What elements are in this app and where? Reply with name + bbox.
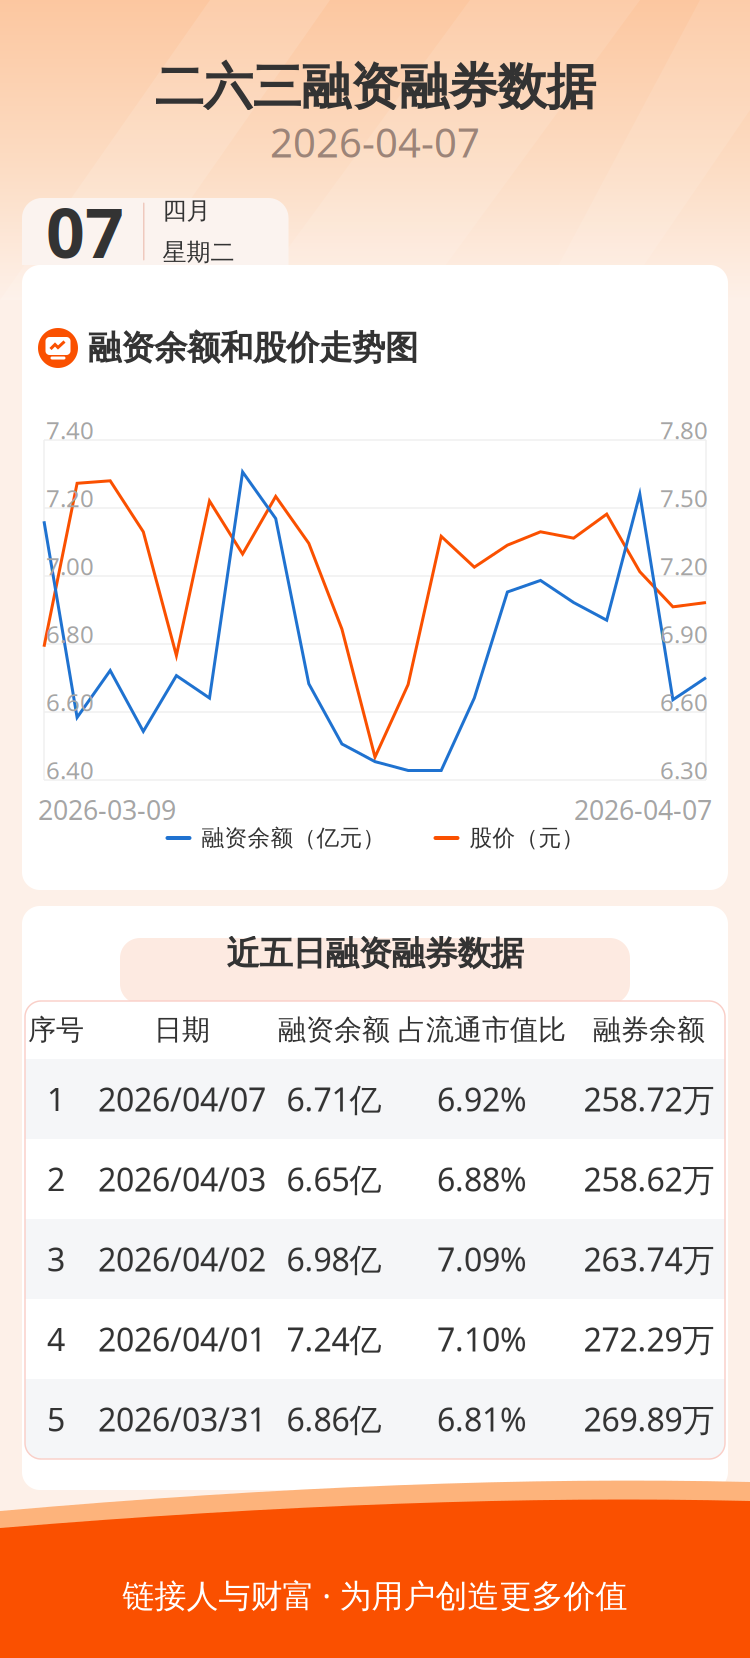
staticText: 占流通市值比 <box>398 1013 566 1047</box>
staticText: 4 <box>47 1318 65 1360</box>
staticText: 6.81% <box>437 1398 527 1440</box>
staticText: 股价（元） <box>469 824 584 852</box>
staticText: 7.24亿 <box>286 1318 381 1360</box>
staticText: 6.60 <box>660 686 708 718</box>
staticText: 融资余额 <box>278 1013 390 1047</box>
staticText: 2026/04/03 <box>98 1158 266 1200</box>
staticText: 2026-03-09 <box>38 792 176 827</box>
staticText: 星期二 <box>162 237 234 267</box>
staticText: 258.72万 <box>583 1078 714 1120</box>
staticText: 5 <box>47 1398 65 1440</box>
staticText: 263.74万 <box>583 1238 714 1280</box>
staticText: 6.30 <box>660 754 708 786</box>
staticText: 2026/04/07 <box>98 1078 266 1120</box>
staticText: 07 <box>46 186 124 277</box>
staticText: 6.60 <box>46 686 94 718</box>
staticText: 6.71亿 <box>286 1078 381 1120</box>
staticText: 7.09% <box>437 1238 527 1280</box>
staticText: 融资余额（亿元） <box>201 824 385 852</box>
staticText: 6.40 <box>46 754 94 786</box>
staticText: 7.10% <box>437 1318 527 1360</box>
staticText: 7.20 <box>46 482 94 514</box>
staticText: 6.88% <box>437 1158 527 1200</box>
staticText: 6.92% <box>437 1078 527 1120</box>
staticText: 7.00 <box>46 550 94 582</box>
staticText: 四月 <box>162 196 210 225</box>
staticText: 2026/04/02 <box>98 1238 266 1280</box>
staticText: 二六三融资融券数据 <box>154 57 595 117</box>
staticText: 链接人与财富 · 为用户创造更多价值 <box>122 1574 627 1616</box>
staticText: 融券余额 <box>593 1013 705 1047</box>
staticText: 6.90 <box>660 618 708 650</box>
staticText: 2026-04-07 <box>270 115 480 168</box>
staticText: 269.89万 <box>583 1398 714 1440</box>
staticText: 2026/03/31 <box>98 1398 266 1440</box>
staticText: 2 <box>47 1158 65 1200</box>
staticText: 258.62万 <box>583 1158 714 1200</box>
staticText: 7.80 <box>660 414 708 446</box>
staticText: 272.29万 <box>583 1318 714 1360</box>
staticText: 7.20 <box>660 550 708 582</box>
staticText: 6.98亿 <box>286 1238 381 1280</box>
staticText: 7.50 <box>660 482 708 514</box>
staticText: 6.80 <box>46 618 94 650</box>
staticText: 2026/04/01 <box>98 1318 266 1360</box>
staticText: 6.65亿 <box>286 1158 381 1200</box>
staticText: 2026-04-07 <box>574 792 712 827</box>
staticText: 近五日融资融券数据 <box>226 933 523 974</box>
staticText: 6.86亿 <box>286 1398 381 1440</box>
staticText: 日期 <box>154 1013 210 1047</box>
staticText: 融资余额和股价走势图 <box>88 327 418 368</box>
staticText: 3 <box>47 1238 65 1280</box>
staticText: 1 <box>47 1078 65 1120</box>
staticText: 序号 <box>28 1013 84 1047</box>
staticText: 7.40 <box>46 414 94 446</box>
